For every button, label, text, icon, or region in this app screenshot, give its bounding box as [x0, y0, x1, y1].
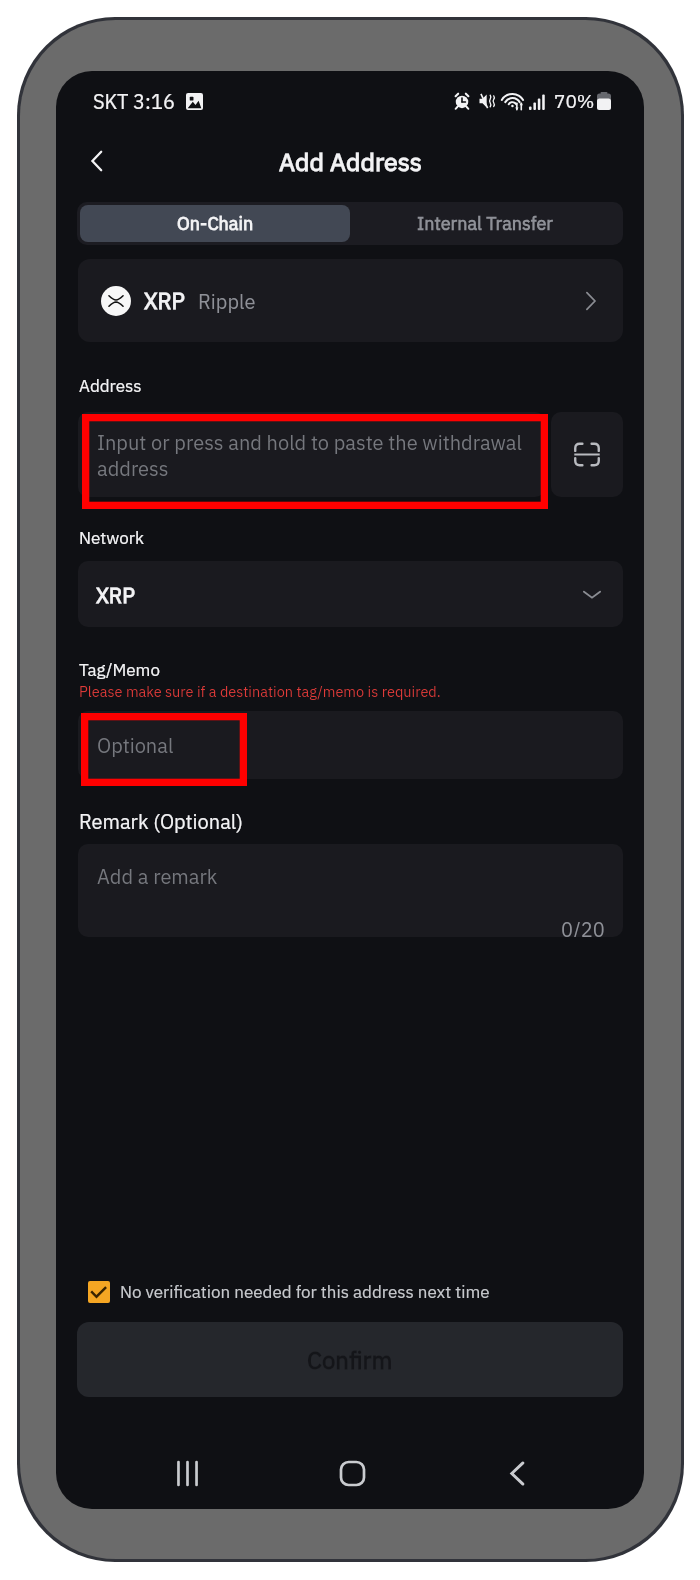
button[interactable]: XRP: [78, 259, 623, 342]
button[interactable]: Optional: [78, 711, 623, 779]
button[interactable]: Scan QR code: [551, 412, 623, 497]
button[interactable]: XRP: [78, 561, 623, 627]
staticText: Ripple: [198, 288, 256, 314]
staticText: XRP: [96, 581, 136, 608]
staticText: Network: [79, 527, 145, 549]
staticText: Add a remark: [97, 863, 218, 889]
staticText: 0/20: [561, 916, 605, 937]
staticText: Optional: [97, 732, 174, 758]
staticText: SKT 3:16: [93, 88, 175, 114]
staticText: Internal Transfer: [417, 212, 553, 235]
staticText: On-Chain: [177, 212, 254, 235]
staticText: Please make sure if a destination tag/me…: [79, 682, 441, 701]
staticText: 70%: [554, 89, 595, 114]
button[interactable]: Input or press and hold to paste the wit…: [78, 412, 545, 497]
staticText: Remark (Optional): [79, 808, 243, 834]
button[interactable]: Back: [482, 1450, 552, 1496]
staticText: Input or press and hold to paste the wit…: [97, 429, 533, 481]
button[interactable]: Add a remark: [78, 844, 623, 937]
button[interactable]: Internal Transfer: [350, 205, 620, 242]
staticText: XRP: [144, 286, 185, 315]
staticText: Add Address: [279, 145, 422, 178]
staticText: Tag/Memo: [79, 659, 160, 681]
button[interactable]: Back: [77, 139, 121, 183]
button[interactable]: On-Chain: [80, 205, 350, 242]
button[interactable]: Home: [314, 1450, 390, 1496]
button[interactable]: No verification needed for this address …: [80, 1272, 550, 1312]
staticText: Address: [79, 375, 142, 397]
staticText: Confirm: [307, 1344, 393, 1375]
staticText: No verification needed for this address …: [120, 1281, 490, 1303]
button[interactable]: Recents: [147, 1450, 227, 1496]
